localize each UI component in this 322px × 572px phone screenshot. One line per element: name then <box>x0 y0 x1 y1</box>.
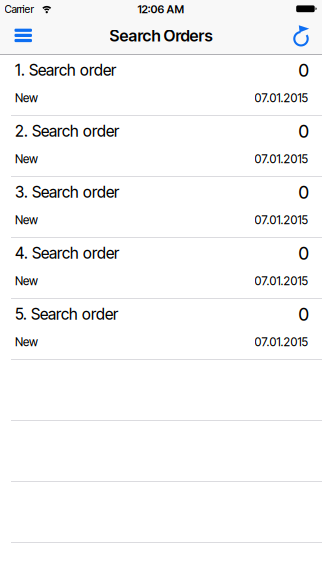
staticText: 0 <box>298 59 308 81</box>
button[interactable]: 5. Search order <box>0 299 322 359</box>
button[interactable]: 3. Search order <box>0 177 322 237</box>
staticText: New <box>15 213 38 227</box>
staticText: 07.01.2015 <box>254 335 308 349</box>
staticText: 3. Search order <box>15 183 119 202</box>
staticText: 5. Search order <box>15 305 118 324</box>
staticText: 0 <box>298 181 308 203</box>
staticText: 0 <box>298 242 308 264</box>
staticText: 0 <box>298 120 308 142</box>
staticText: 0 <box>298 303 308 325</box>
staticText: 4. Search order <box>15 244 119 263</box>
staticText: 07.01.2015 <box>254 91 308 105</box>
staticText: New <box>15 91 38 105</box>
staticText: Search Orders <box>109 26 212 45</box>
staticText: 12:06 AM <box>137 2 184 16</box>
button[interactable]: 2. Search order <box>0 116 322 176</box>
button[interactable]: 1. Search order <box>0 55 322 115</box>
staticText: 07.01.2015 <box>254 274 308 288</box>
staticText: New <box>15 274 38 288</box>
button[interactable]: 4. Search order <box>0 238 322 298</box>
button[interactable]: Menu <box>0 20 44 54</box>
staticText: 07.01.2015 <box>254 213 308 227</box>
button[interactable]: Refresh <box>283 20 322 54</box>
staticText: New <box>15 152 38 166</box>
staticText: Carrier <box>4 3 33 15</box>
staticText: 07.01.2015 <box>254 152 308 166</box>
staticText: 2. Search order <box>15 122 119 141</box>
staticText: 1. Search order <box>15 61 116 80</box>
staticText: New <box>15 335 38 349</box>
